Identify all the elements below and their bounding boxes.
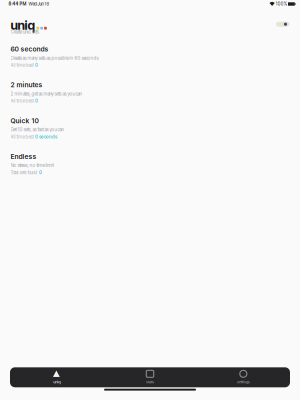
- staticText: stats: [146, 379, 154, 384]
- staticText: Get 10 sets, as fast as you can: [10, 127, 64, 132]
- button[interactable]: 2 minutes: [0, 81, 300, 117]
- staticText: 0: [35, 62, 38, 68]
- staticText: Wed Jun 18: [27, 1, 49, 7]
- staticText: 0 seconds: [35, 134, 57, 139]
- button[interactable]: stats: [103, 370, 197, 384]
- button[interactable]: settings: [197, 370, 290, 384]
- staticText: 0: [35, 98, 38, 104]
- button[interactable]: Toggle appearance: [276, 22, 289, 27]
- staticText: settings: [237, 379, 250, 384]
- staticText: All time best: [10, 134, 33, 139]
- button[interactable]: Endless: [0, 152, 300, 188]
- staticText: Create uniq sets: [11, 29, 39, 35]
- staticText: Quick 10: [10, 117, 38, 125]
- staticText: Total sets found: [10, 170, 37, 175]
- staticText: 8:44 PM: [9, 1, 27, 7]
- staticText: Create as many sets as possible in 60 se…: [10, 55, 98, 61]
- staticText: Endless: [10, 152, 36, 161]
- staticText: uniq: [10, 17, 35, 33]
- staticText: 100%: [275, 1, 287, 7]
- staticText: uniq: [53, 379, 60, 384]
- staticText: All time best: [10, 98, 33, 104]
- staticText: 60 seconds: [10, 45, 48, 53]
- staticText: No stress, no time limit: [10, 163, 53, 168]
- staticText: All time best: [10, 62, 33, 68]
- staticText: 2 minutes, get as many sets as you can: [10, 91, 82, 97]
- staticText: 0: [39, 170, 42, 175]
- button[interactable]: uniq: [10, 370, 103, 384]
- staticText: 2 minutes: [10, 81, 42, 89]
- button[interactable]: 60 seconds: [0, 45, 300, 81]
- button[interactable]: Quick 10: [0, 117, 300, 152]
